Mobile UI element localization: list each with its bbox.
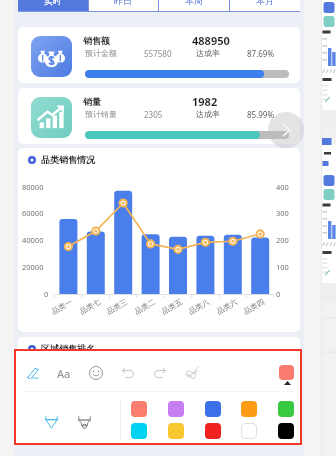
staticText: 488950 bbox=[192, 33, 230, 48]
button[interactable]: Pen bbox=[22, 363, 42, 383]
button[interactable]: 昨日 bbox=[88, 0, 158, 12]
button[interactable]: Next bbox=[268, 112, 304, 148]
staticText: 40000 bbox=[22, 235, 44, 245]
staticText: Aa bbox=[57, 366, 71, 380]
staticText: 品类三 bbox=[105, 297, 129, 316]
staticText: 0 bbox=[44, 289, 49, 299]
staticText: 品类七 bbox=[78, 297, 102, 316]
button[interactable]: Thin pen bbox=[41, 411, 61, 431]
staticText: 557580 bbox=[144, 48, 172, 59]
staticText: 300 bbox=[276, 208, 289, 218]
button[interactable]: Colour bbox=[131, 423, 147, 439]
button[interactable]: Thick pen bbox=[74, 411, 94, 431]
button[interactable]: Colour bbox=[131, 401, 147, 417]
button[interactable]: Current colour bbox=[279, 365, 294, 380]
staticText: 品类五 bbox=[160, 297, 184, 316]
staticText: 100 bbox=[276, 262, 289, 272]
button[interactable]: 实时 bbox=[18, 0, 88, 12]
staticText: 品类六 bbox=[215, 297, 239, 316]
staticText: 品类销售情况 bbox=[41, 154, 95, 165]
staticText: 销量 bbox=[83, 96, 101, 107]
staticText: 昨日 bbox=[114, 0, 132, 6]
button[interactable]: 本月 bbox=[229, 0, 300, 12]
staticText: 达成率 bbox=[196, 48, 220, 58]
staticText: 60000 bbox=[22, 208, 44, 218]
staticText: 本月 bbox=[256, 0, 274, 6]
staticText: 实时 bbox=[44, 0, 62, 6]
button[interactable]: Colour bbox=[205, 423, 221, 439]
staticText: 400 bbox=[276, 182, 289, 192]
staticText: 85.99% bbox=[247, 109, 275, 120]
staticText: 2305 bbox=[144, 109, 163, 120]
staticText: 20000 bbox=[22, 262, 44, 272]
button[interactable]: Colour bbox=[278, 401, 294, 417]
staticText: 品类一 bbox=[50, 297, 74, 316]
staticText: 1982 bbox=[192, 94, 218, 109]
staticText: 200 bbox=[276, 235, 289, 245]
staticText: 预计金额 bbox=[85, 48, 117, 58]
button[interactable]: 销量 bbox=[18, 88, 300, 144]
staticText: 预计销量 bbox=[85, 109, 117, 119]
button[interactable]: Colour bbox=[168, 401, 184, 417]
button[interactable]: Text bbox=[55, 366, 73, 380]
staticText: 87.69% bbox=[247, 48, 275, 59]
button[interactable]: Redo bbox=[150, 363, 170, 383]
button[interactable]: Colour bbox=[241, 423, 257, 439]
button[interactable]: Colour bbox=[278, 423, 294, 439]
staticText: 本周 bbox=[185, 0, 203, 6]
staticText: 0 bbox=[276, 289, 281, 299]
button[interactable]: Colour bbox=[241, 401, 257, 417]
staticText: 达成率 bbox=[196, 109, 220, 119]
button[interactable]: Clear bbox=[182, 363, 202, 383]
staticText: 品类四 bbox=[242, 297, 266, 316]
staticText: 销售额 bbox=[83, 35, 110, 46]
button[interactable]: Colour bbox=[168, 423, 184, 439]
button[interactable]: Undo bbox=[118, 363, 138, 383]
staticText: 区域销售排名 bbox=[41, 343, 95, 354]
staticText: 80000 bbox=[22, 182, 44, 192]
button[interactable]: 本周 bbox=[158, 0, 229, 12]
button[interactable]: 销售额 bbox=[18, 27, 300, 83]
staticText: 品类八 bbox=[187, 297, 211, 316]
button[interactable]: Emoji bbox=[86, 363, 106, 383]
staticText: 品类二 bbox=[133, 297, 157, 316]
button[interactable]: Colour bbox=[205, 401, 221, 417]
